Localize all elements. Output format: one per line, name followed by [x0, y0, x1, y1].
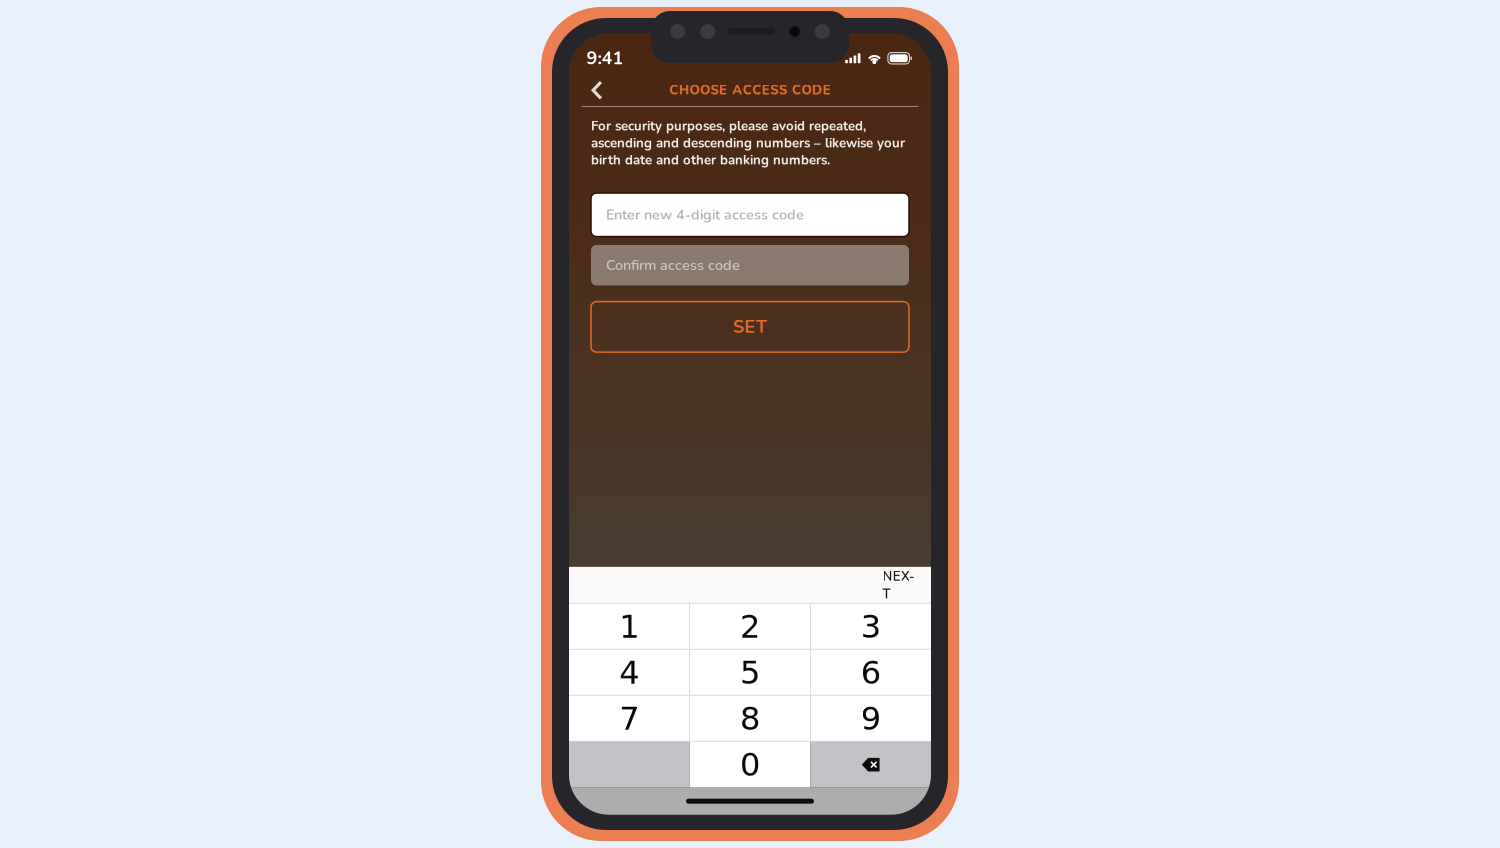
- staticText: 1: [619, 608, 639, 645]
- button[interactable]: 5: [690, 650, 810, 696]
- button[interactable]: SET: [591, 302, 909, 352]
- staticText: 8: [740, 700, 760, 737]
- staticText: 5: [740, 654, 760, 691]
- staticText: 9:41: [586, 46, 623, 71]
- staticText: 6: [861, 654, 881, 691]
- button[interactable]: 6: [810, 650, 931, 696]
- staticText: Enter new 4-digit access code: [606, 205, 804, 225]
- staticText: 4: [619, 654, 639, 691]
- button[interactable]: 9: [810, 696, 931, 742]
- button[interactable]: 1: [569, 604, 690, 650]
- button[interactable]: 0: [690, 742, 810, 788]
- staticText: 0: [740, 746, 760, 783]
- staticText: 7: [619, 700, 639, 737]
- button[interactable]: Enter new 4-digit access code: [591, 193, 909, 236]
- staticText: 3: [861, 608, 881, 645]
- staticText: Confirm access code: [606, 255, 740, 275]
- button[interactable]: Back: [583, 75, 611, 105]
- button[interactable]: Confirm access code: [591, 245, 909, 285]
- staticText: CHOOSE ACCESS CODE: [669, 81, 831, 99]
- button[interactable]: 7: [569, 696, 690, 742]
- staticText: 2: [740, 608, 760, 645]
- button[interactable]: 2: [690, 604, 810, 650]
- button[interactable]: Blank key: [569, 742, 690, 788]
- staticText: NEXT: [883, 567, 915, 603]
- staticText: 9: [861, 700, 881, 737]
- button[interactable]: Delete: [810, 742, 931, 788]
- staticText: SET: [733, 315, 767, 339]
- staticText: For security purposes, please avoid repe…: [591, 117, 905, 169]
- button[interactable]: 3: [810, 604, 931, 650]
- button[interactable]: 4: [569, 650, 690, 696]
- button[interactable]: NEXT: [867, 554, 931, 616]
- button[interactable]: 8: [690, 696, 810, 742]
